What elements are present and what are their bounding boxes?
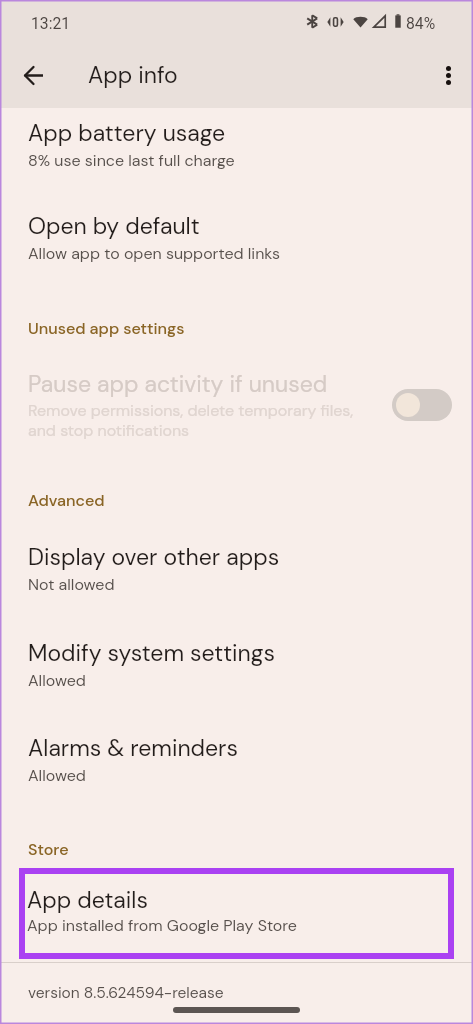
button[interactable]: Modify system settings (0, 626, 473, 698)
staticText: Advanced (28, 490, 105, 511)
button[interactable]: Pause app activity toggle (392, 389, 452, 421)
staticText: Open by default (28, 211, 200, 241)
staticText: 8% use since last full charge (28, 150, 235, 171)
staticText: 13:21 (31, 14, 71, 32)
staticText: Remove permissions, delete temporary fil… (28, 400, 358, 441)
staticText: Allow app to open supported links (28, 243, 280, 264)
button[interactable]: Display over other apps (0, 530, 473, 602)
staticText: Allowed (28, 765, 86, 786)
staticText: Allowed (28, 670, 86, 691)
staticText: Pause app activity if unused (28, 369, 328, 399)
staticText: Display over other apps (28, 542, 280, 572)
button[interactable]: Back (9, 53, 57, 101)
button[interactable]: App battery usage (0, 106, 473, 178)
staticText: Modify system settings (28, 638, 275, 668)
button[interactable]: App details (25, 874, 448, 953)
staticText: Unused app settings (28, 318, 185, 339)
button[interactable]: Open by default (0, 199, 473, 271)
button[interactable]: Alarms & reminders (0, 721, 473, 793)
button[interactable]: Pause app activity if unused (0, 357, 473, 449)
staticText: App installed from Google Play Store (27, 915, 297, 936)
staticText: App details (27, 885, 148, 915)
staticText: version 8.5.624594-release (28, 983, 224, 1003)
staticText: 84% (406, 14, 436, 32)
staticText: Store (28, 839, 69, 860)
staticText: App info (88, 60, 178, 90)
button[interactable]: More options (424, 51, 472, 99)
staticText: App battery usage (28, 118, 226, 148)
staticText: Alarms & reminders (28, 733, 238, 763)
staticText: Not allowed (28, 574, 115, 595)
